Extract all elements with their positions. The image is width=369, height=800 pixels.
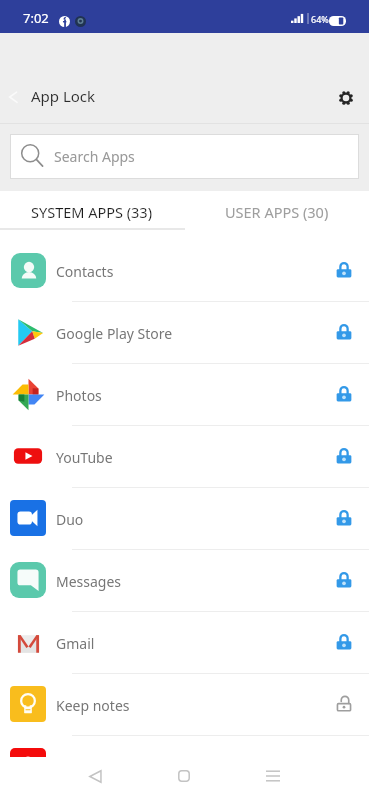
button[interactable]: SYSTEM APPS (33) <box>0 191 184 240</box>
staticText: Messages <box>56 572 122 591</box>
staticText: Google Play Store <box>56 324 173 343</box>
button[interactable]: Messages <box>0 550 369 612</box>
staticText: Photos <box>56 386 102 405</box>
button[interactable]: Photos <box>0 364 369 426</box>
staticText: Gmail <box>56 634 95 653</box>
button[interactable]: Contacts <box>0 240 369 302</box>
staticText: Search Apps <box>54 147 135 166</box>
button[interactable]: Settings <box>329 81 363 115</box>
button[interactable]: Back <box>77 758 113 794</box>
button[interactable]: Duo <box>0 488 369 550</box>
staticText: Duo <box>56 510 84 529</box>
staticText: YouTube <box>56 448 113 467</box>
button[interactable]: Music <box>0 736 369 798</box>
staticText: 64% <box>311 13 329 25</box>
button[interactable]: Search Apps <box>11 135 358 178</box>
staticText: USER APPS (30) <box>225 202 329 222</box>
staticText: SYSTEM APPS (33) <box>31 202 153 222</box>
staticText: Contacts <box>56 262 114 281</box>
button[interactable]: YouTube <box>0 426 369 488</box>
button[interactable]: Gmail <box>0 612 369 674</box>
button[interactable]: Keep notes <box>0 674 369 736</box>
button[interactable]: Recent apps <box>255 758 291 794</box>
button[interactable]: USER APPS (30) <box>184 191 369 240</box>
staticText: Music <box>56 758 95 777</box>
button[interactable]: Google Play Store <box>0 302 369 364</box>
staticText: Keep notes <box>56 696 130 715</box>
staticText: 7:02 <box>23 9 49 27</box>
button[interactable]: Home <box>166 758 202 794</box>
staticText: App Lock <box>31 86 96 106</box>
